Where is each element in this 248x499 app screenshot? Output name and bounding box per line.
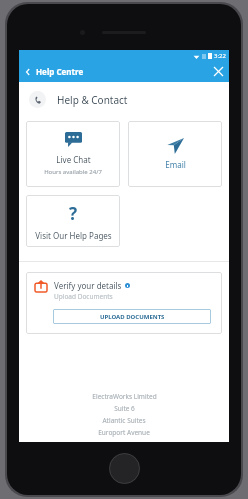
staticText: Help Centre [36,66,84,77]
staticText: Visit Our Help Pages [35,230,112,241]
button[interactable]: Live Chat [26,121,120,187]
staticText: Email [165,159,186,170]
staticText: Europort Avenue [98,428,150,437]
button[interactable]: ? [26,195,120,247]
button[interactable]: Back [19,65,37,79]
staticText: UPLOAD DOCUMENTS [100,313,165,321]
staticText: Suite 6 [114,404,135,413]
staticText: ? [69,202,78,225]
staticText: ElectraWorks Limited [92,392,157,401]
staticText: Verify your details [54,280,122,291]
staticText: Live Chat [56,154,91,165]
staticText: 3:22 [214,52,226,60]
button[interactable]: Close [208,61,229,82]
button[interactable]: UPLOAD DOCUMENTS [53,309,211,324]
staticText: Help & Contact [57,93,128,107]
button[interactable]: Email [128,121,222,187]
staticText: Atlantic Suites [102,416,146,425]
staticText: Upload Documents [54,292,113,301]
staticText: Hours available 24/7 [44,168,102,176]
